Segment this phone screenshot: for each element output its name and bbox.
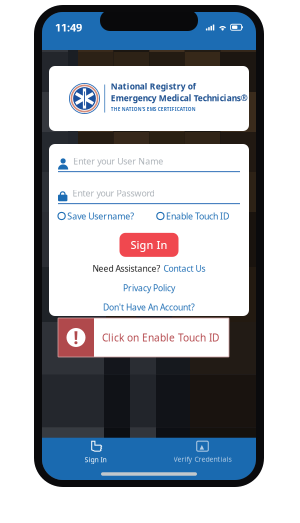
button[interactable]: Save Username? bbox=[58, 210, 134, 222]
staticText: National Registry of bbox=[111, 81, 196, 92]
staticText: Enter your Password bbox=[72, 187, 154, 199]
staticText: Save Username? bbox=[67, 210, 134, 222]
staticText: Need Assistance? bbox=[92, 263, 160, 274]
button[interactable]: Verify Credentials bbox=[149, 441, 256, 464]
button[interactable]: Privacy Policy bbox=[123, 282, 175, 293]
button[interactable]: Contact Us bbox=[163, 263, 205, 274]
staticText: Don't Have An Account? bbox=[103, 301, 195, 313]
staticText: Click on Enable Touch ID bbox=[102, 331, 219, 344]
staticText: Privacy Policy bbox=[123, 282, 175, 293]
staticText: ! bbox=[73, 326, 78, 349]
staticText: Enable Touch ID bbox=[166, 210, 229, 222]
staticText: Emergency Medical Technicians® bbox=[111, 92, 248, 104]
staticText: Sign In bbox=[84, 455, 106, 464]
button[interactable]: Sign In bbox=[119, 233, 178, 257]
staticText: Contact Us bbox=[163, 263, 205, 274]
staticText: Sign In bbox=[130, 238, 167, 252]
button[interactable]: Sign In bbox=[42, 440, 149, 464]
staticText: Verify Credentials bbox=[173, 454, 231, 464]
button[interactable]: Enable Touch ID bbox=[157, 210, 229, 222]
staticText: Enter your User Name bbox=[73, 155, 163, 167]
staticText: THE NATION'S EMS CERTIFICATION bbox=[111, 106, 196, 112]
staticText: 11:49 bbox=[55, 20, 82, 34]
button[interactable]: Don't Have An Account? bbox=[103, 301, 195, 313]
